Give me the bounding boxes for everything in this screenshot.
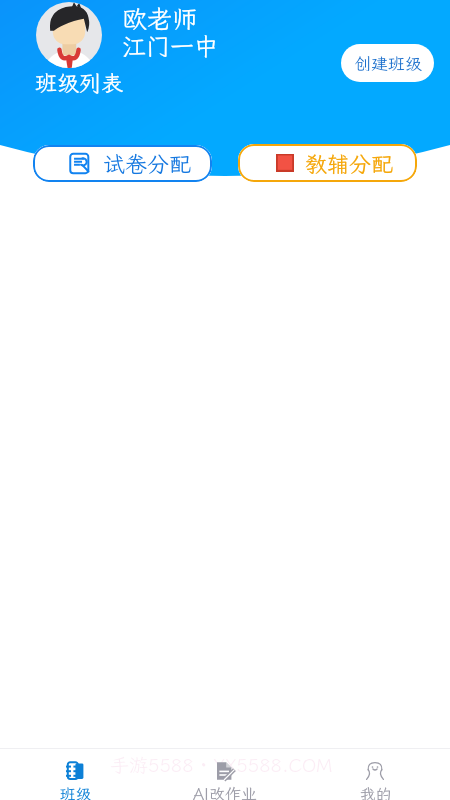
staticText: 手游5588 · YX5588.COM — [110, 752, 333, 777]
button[interactable]: 创建班级 — [341, 44, 434, 82]
staticText: 试卷分配 — [103, 149, 192, 178]
button[interactable]: 教辅分配 — [238, 144, 417, 182]
button[interactable]: 我的 — [300, 749, 450, 800]
staticText: 我的 — [359, 783, 392, 800]
staticText: AI改作业 — [193, 783, 257, 800]
staticText: 创建班级 — [354, 52, 422, 74]
button[interactable]: AI改作业 — [150, 749, 300, 800]
staticText: 欧老师 — [122, 2, 198, 35]
staticText: 班级列表 — [35, 68, 124, 97]
button[interactable]: 班级 — [0, 749, 150, 800]
staticText: 教辅分配 — [305, 149, 394, 178]
button[interactable] — [36, 2, 102, 68]
staticText: 班级 — [59, 783, 92, 800]
button[interactable]: 试卷分配 — [33, 145, 212, 182]
staticText: 江门一中 — [122, 30, 218, 62]
